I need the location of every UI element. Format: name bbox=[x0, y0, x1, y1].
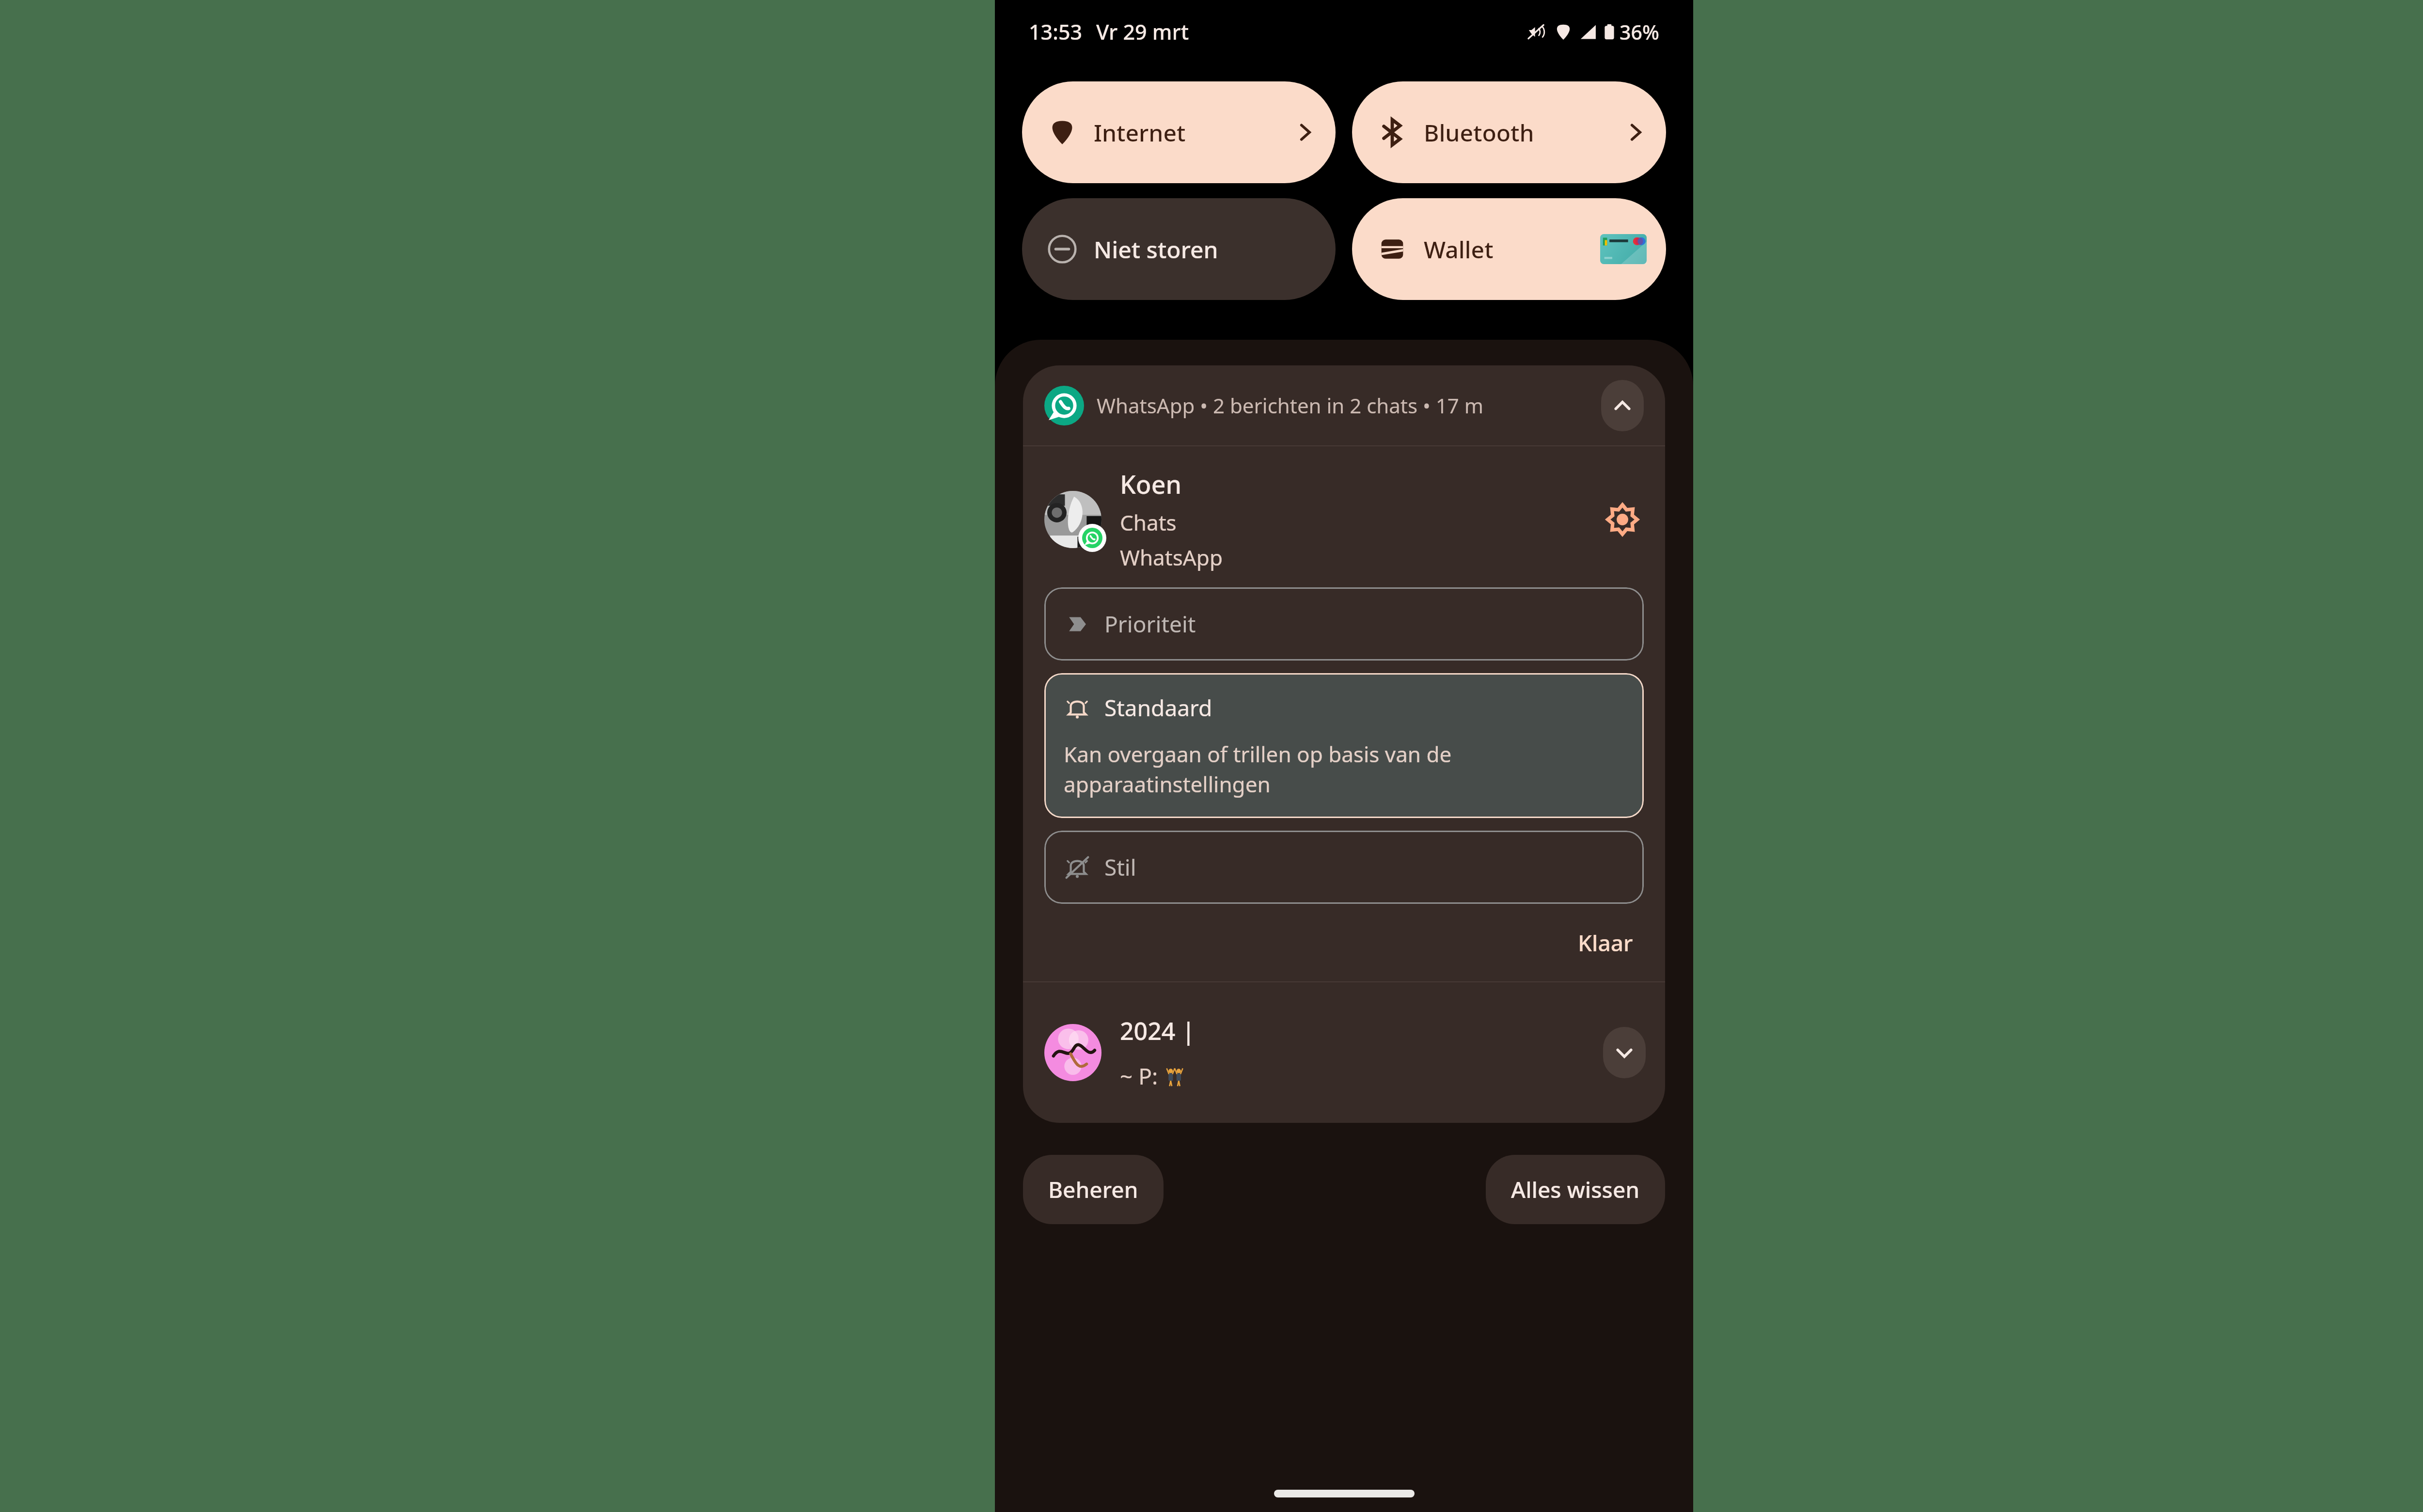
staticText: ~ P: bbox=[1120, 1061, 1158, 1091]
staticText: Bluetooth bbox=[1424, 117, 1534, 148]
button[interactable]: WhatsApp • 2 berichten in 2 chats • 17 m bbox=[1023, 365, 1665, 445]
staticText: Klaar bbox=[1578, 928, 1633, 958]
button[interactable]: Uitvouwen bbox=[1603, 1027, 1646, 1078]
button[interactable]: Wallet bbox=[1352, 198, 1666, 300]
staticText: WhatsApp • 2 berichten in 2 chats • 17 m bbox=[1097, 392, 1483, 419]
staticText: Beheren bbox=[1048, 1174, 1138, 1205]
staticText: Stil bbox=[1104, 852, 1136, 882]
button[interactable]: Klaar bbox=[1567, 921, 1644, 965]
button[interactable]: Internet bbox=[1022, 81, 1336, 183]
staticText: WhatsApp bbox=[1120, 543, 1223, 572]
staticText: Wallet bbox=[1424, 234, 1494, 265]
staticText: Alles wissen bbox=[1511, 1174, 1640, 1205]
staticText: Prioriteit bbox=[1104, 609, 1196, 639]
button[interactable]: Instellingen bbox=[1599, 496, 1646, 543]
button[interactable]: Prioriteit bbox=[1044, 587, 1644, 661]
button[interactable]: Niet storen bbox=[1022, 198, 1336, 300]
button[interactable]: Standaard bbox=[1044, 673, 1644, 818]
staticText: 2024 | bbox=[1120, 1014, 1195, 1047]
staticText: Koen bbox=[1120, 467, 1182, 501]
staticText: Kan overgaan of trillen op basis van de … bbox=[1064, 740, 1452, 799]
staticText: Standaard bbox=[1104, 693, 1212, 723]
button[interactable]: Bluetooth bbox=[1352, 81, 1666, 183]
button[interactable]: 2024 | bbox=[1023, 982, 1665, 1123]
button[interactable]: Alles wissen bbox=[1486, 1155, 1665, 1224]
button[interactable]: Samenvouwen bbox=[1601, 380, 1644, 431]
button[interactable]: Beheren bbox=[1023, 1155, 1164, 1224]
staticText: Vr 29 mrt bbox=[1096, 17, 1189, 46]
staticText: Chats bbox=[1120, 508, 1177, 537]
button[interactable]: Stil bbox=[1044, 831, 1644, 904]
staticText: Internet bbox=[1094, 117, 1186, 148]
staticText: 36% bbox=[1620, 18, 1659, 46]
staticText: 13:53 bbox=[1029, 17, 1083, 46]
staticText: Niet storen bbox=[1094, 234, 1218, 265]
